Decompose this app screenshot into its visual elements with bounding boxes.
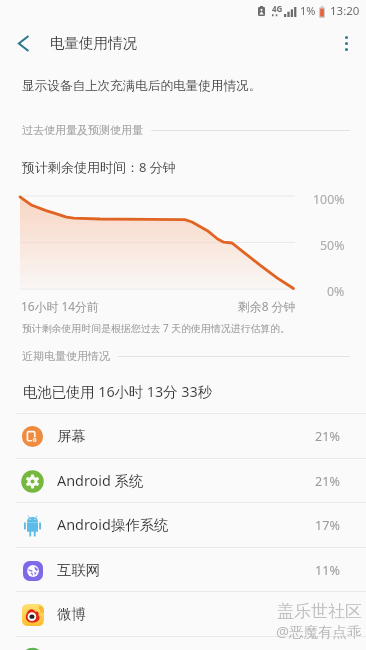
staticText: 21% [315,473,340,490]
staticText: 21% [315,428,340,445]
staticText: 盖乐世社区 [277,601,362,622]
button[interactable]: Android操作系统 [0,503,366,547]
staticText: 1% [300,3,316,18]
staticText: 预计剩余使用时间：8 分钟 [22,158,176,176]
staticText: 电池已使用 16小时 13分 33秒 [23,382,212,402]
staticText: 屏幕 [57,427,86,445]
button[interactable]: More options [326,22,366,64]
staticText: 100% [313,191,345,208]
staticText: 4G [272,3,283,14]
staticText: 显示设备自上次充满电后的电量使用情况。 [22,78,262,94]
staticText: 微博 [57,605,86,623]
button[interactable]: 微博 [0,592,366,636]
button[interactable] [0,637,366,650]
button[interactable]: 屏幕 [0,414,366,458]
staticText: 近期电量使用情况 [22,349,110,363]
staticText: 过去使用量及预测使用量 [22,123,143,137]
staticText: 互联网 [57,561,101,579]
staticText: Android操作系统 [57,515,169,535]
staticText: 16小时 14分前 [21,298,99,314]
button[interactable]: Back [0,22,46,64]
staticText: 电量使用情况 [50,34,137,52]
staticText: 预计剩余使用时间是根据您过去 7 天的使用情况进行估算的。 [22,321,290,335]
staticText: 13:20 [330,3,360,19]
button[interactable]: 互联网 [0,548,366,592]
button[interactable]: Android 系统 [0,459,366,503]
staticText: 0% [327,283,345,300]
staticText: Android 系统 [57,471,144,491]
staticText: 11% [315,562,340,579]
staticText: 50% [320,237,345,254]
staticText: @恶魔有点乖 [276,621,362,641]
staticText: 剩余8 分钟 [238,298,296,314]
staticText: 17% [315,517,340,534]
